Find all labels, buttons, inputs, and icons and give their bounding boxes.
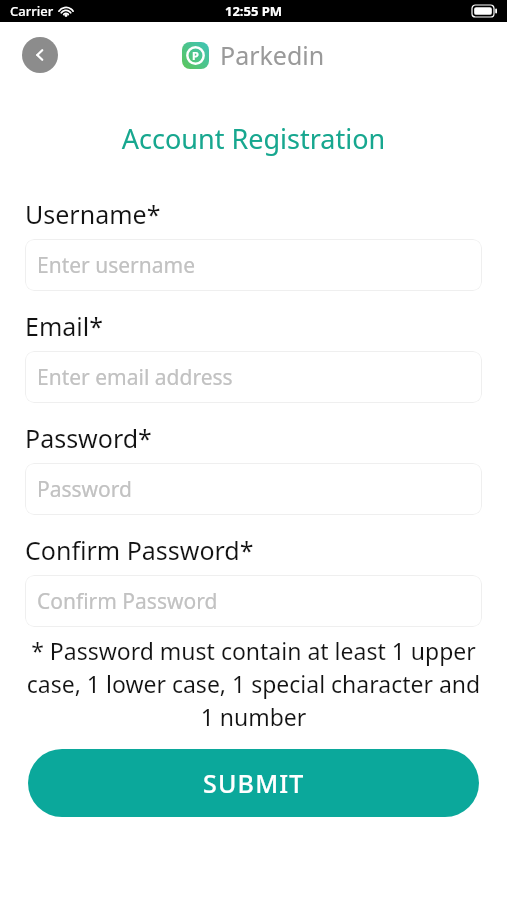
staticText: Password* xyxy=(25,421,152,455)
staticText: Account Registration xyxy=(0,120,507,157)
button[interactable]: Enter email address xyxy=(25,351,482,403)
staticText: Username* xyxy=(25,197,161,231)
button[interactable]: Password xyxy=(25,463,482,515)
staticText: 12:55 PM xyxy=(225,2,283,20)
staticText: * Password must contain at least 1 upper… xyxy=(20,635,487,733)
button[interactable]: Back xyxy=(22,37,58,73)
button[interactable]: SUBMIT xyxy=(28,749,479,817)
staticText: P xyxy=(192,48,199,63)
staticText: Enter username xyxy=(37,251,196,280)
staticText: Confirm Password xyxy=(37,587,218,616)
button[interactable]: Enter username xyxy=(25,239,482,291)
staticText: Parkedin xyxy=(220,38,325,72)
staticText: SUBMIT xyxy=(203,766,305,800)
button[interactable]: Confirm Password xyxy=(25,575,482,627)
staticText: Enter email address xyxy=(37,363,233,392)
staticText: Carrier xyxy=(10,2,54,20)
staticText: Confirm Password* xyxy=(25,533,254,567)
staticText: Password xyxy=(37,475,132,504)
staticText: Email* xyxy=(25,309,103,343)
